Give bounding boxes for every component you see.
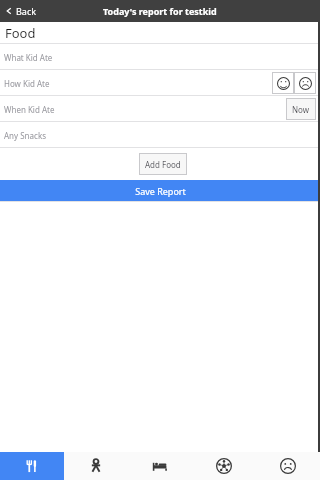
staticText: Today's report for testkid bbox=[103, 5, 217, 17]
staticText: When Kid Ate bbox=[4, 104, 286, 115]
button[interactable]: Add Food bbox=[139, 153, 187, 175]
button[interactable]: Ate poorly bbox=[294, 72, 316, 94]
staticText: What Kid Ate bbox=[4, 52, 316, 63]
button[interactable]: Back bbox=[0, 0, 45, 22]
button[interactable]: Food bbox=[0, 452, 64, 480]
button[interactable]: When Kid Ate bbox=[0, 96, 320, 122]
button[interactable]: Ate well bbox=[272, 72, 294, 94]
button[interactable]: Any Snacks bbox=[0, 122, 320, 148]
button[interactable]: Potty bbox=[64, 452, 128, 480]
staticText: Save Report bbox=[135, 185, 186, 197]
staticText: Back bbox=[16, 5, 37, 17]
button[interactable]: How Kid Ate bbox=[0, 70, 320, 96]
staticText: Add Food bbox=[145, 159, 181, 170]
staticText: How Kid Ate bbox=[4, 78, 272, 89]
staticText: Food bbox=[5, 24, 36, 42]
button[interactable]: Save Report bbox=[0, 180, 320, 201]
button[interactable]: Nap bbox=[128, 452, 192, 480]
button[interactable]: Now bbox=[286, 98, 316, 120]
button[interactable]: Mood bbox=[256, 452, 320, 480]
button[interactable]: Play bbox=[192, 452, 256, 480]
button[interactable]: What Kid Ate bbox=[0, 44, 320, 70]
staticText: Now bbox=[292, 104, 310, 115]
staticText: Any Snacks bbox=[4, 130, 316, 141]
